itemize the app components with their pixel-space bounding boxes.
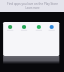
staticText: Learn more (25, 6, 40, 10)
staticText: Find apps you love on the Play Store (7, 2, 58, 6)
button[interactable]: Phone screenshot (0, 0, 64, 72)
